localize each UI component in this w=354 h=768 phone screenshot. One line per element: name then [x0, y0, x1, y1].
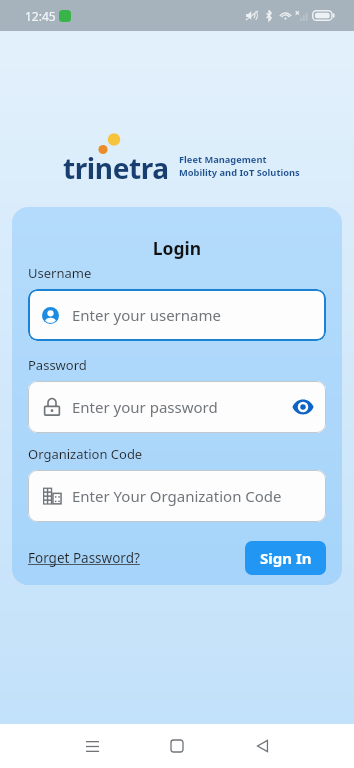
button[interactable]: Show password: [292, 399, 314, 415]
staticText: Login: [28, 236, 326, 260]
staticText: Sign In: [260, 548, 312, 568]
button[interactable]: Forget Password?: [28, 549, 140, 567]
staticText: Mobility and IoT Solutions: [179, 166, 300, 179]
button[interactable]: Enter your username: [28, 289, 326, 341]
button[interactable]: Recent apps: [70, 724, 114, 768]
button[interactable]: Back: [240, 724, 284, 768]
staticText: 12:45: [25, 8, 56, 24]
button[interactable]: Home: [155, 724, 199, 768]
button[interactable]: Sign In: [245, 541, 326, 575]
staticText: Enter your password: [72, 397, 218, 417]
staticText: Username: [28, 264, 92, 282]
staticText: trinetra: [63, 149, 169, 187]
staticText: Enter your username: [72, 305, 221, 325]
button[interactable]: Enter your password: [28, 381, 326, 433]
staticText: Password: [28, 356, 87, 374]
staticText: Enter Your Organization Code: [72, 486, 282, 506]
button[interactable]: Enter Your Organization Code: [28, 470, 326, 522]
staticText: Organization Code: [28, 445, 143, 463]
staticText: Fleet Management: [179, 153, 267, 166]
